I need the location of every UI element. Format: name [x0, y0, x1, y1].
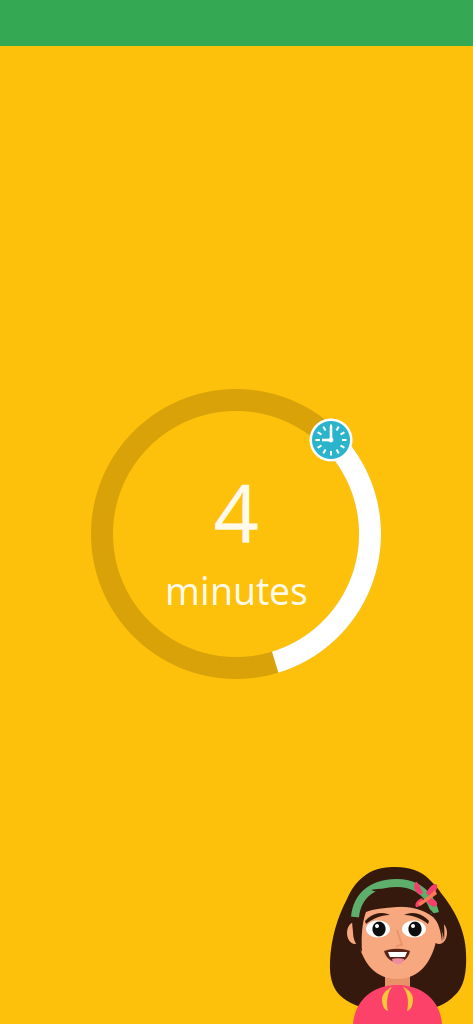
- button[interactable]: 4: [0, 0, 473, 1024]
- staticText: 4: [213, 459, 259, 565]
- staticText: minutes: [165, 566, 308, 615]
